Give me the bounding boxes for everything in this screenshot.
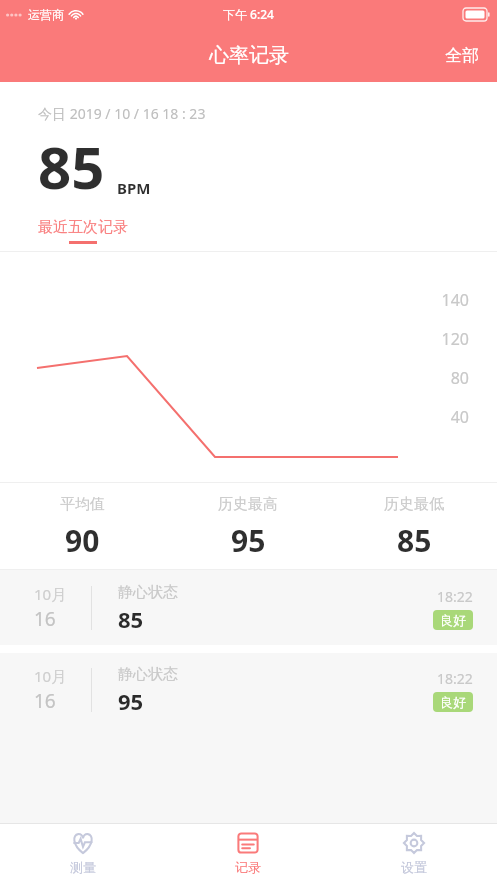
staticText: 18:22 bbox=[437, 587, 473, 606]
staticText: 85 bbox=[118, 604, 144, 634]
staticText: 平均值 bbox=[60, 495, 105, 514]
button[interactable]: 设置 bbox=[331, 823, 497, 883]
staticText: 85 bbox=[38, 127, 105, 206]
staticText: 最近五次记录 bbox=[38, 218, 128, 237]
staticText: BPM bbox=[117, 178, 151, 198]
staticText: 全部 bbox=[445, 45, 479, 66]
staticText: 设置 bbox=[401, 859, 427, 875]
staticText: 今日 2019 / 10 / 16 18 : 23 bbox=[38, 104, 206, 123]
staticText: 良好 bbox=[440, 612, 466, 628]
staticText: 140 bbox=[441, 289, 469, 311]
staticText: 10月 bbox=[34, 666, 67, 686]
staticText: 40 bbox=[450, 406, 469, 428]
button[interactable]: 全部 bbox=[427, 35, 497, 76]
staticText: 心率记录 bbox=[209, 43, 289, 68]
staticText: 静心状态 bbox=[118, 665, 178, 684]
staticText: 16 bbox=[34, 606, 56, 632]
staticText: 90 bbox=[65, 520, 100, 561]
staticText: 下午 6:24 bbox=[223, 6, 274, 22]
staticText: 运营商 bbox=[28, 7, 64, 22]
staticText: 16 bbox=[34, 688, 56, 714]
button[interactable]: 最近五次记录 bbox=[38, 216, 128, 246]
button[interactable]: 10月 bbox=[0, 653, 497, 727]
staticText: 95 bbox=[118, 686, 144, 716]
button[interactable]: 10月 bbox=[0, 571, 497, 645]
staticText: 95 bbox=[231, 520, 266, 561]
staticText: 85 bbox=[397, 520, 432, 561]
staticText: 静心状态 bbox=[118, 583, 178, 602]
button[interactable]: 记录 bbox=[165, 823, 331, 883]
staticText: 历史最高 bbox=[218, 495, 278, 514]
staticText: 80 bbox=[450, 367, 469, 389]
staticText: 120 bbox=[441, 328, 469, 350]
button[interactable]: 测量 bbox=[0, 823, 165, 883]
staticText: 18:22 bbox=[437, 669, 473, 688]
staticText: 记录 bbox=[235, 859, 261, 875]
staticText: 良好 bbox=[440, 694, 466, 710]
staticText: 10月 bbox=[34, 584, 67, 604]
staticText: 历史最低 bbox=[384, 495, 444, 514]
staticText: 测量 bbox=[70, 859, 96, 875]
